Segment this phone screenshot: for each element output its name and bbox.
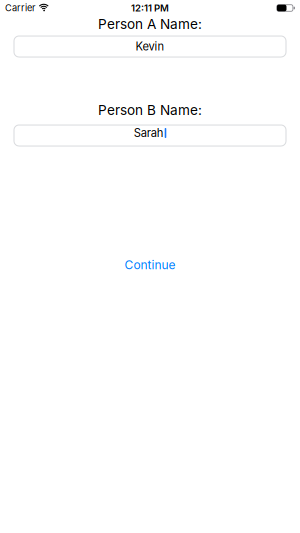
staticText: Person B Name: (98, 102, 202, 118)
staticText: Carrier (5, 2, 35, 13)
button[interactable]: Continue (124, 257, 175, 273)
staticText: Person A Name: (98, 16, 202, 32)
staticText: 12:11 PM (131, 2, 169, 14)
button[interactable]: Person A name text field (14, 36, 286, 57)
staticText: Sarah (134, 126, 164, 140)
staticText: Continue (124, 258, 175, 272)
staticText: Kevin (135, 40, 164, 53)
button[interactable]: Person B name text field (14, 125, 286, 146)
